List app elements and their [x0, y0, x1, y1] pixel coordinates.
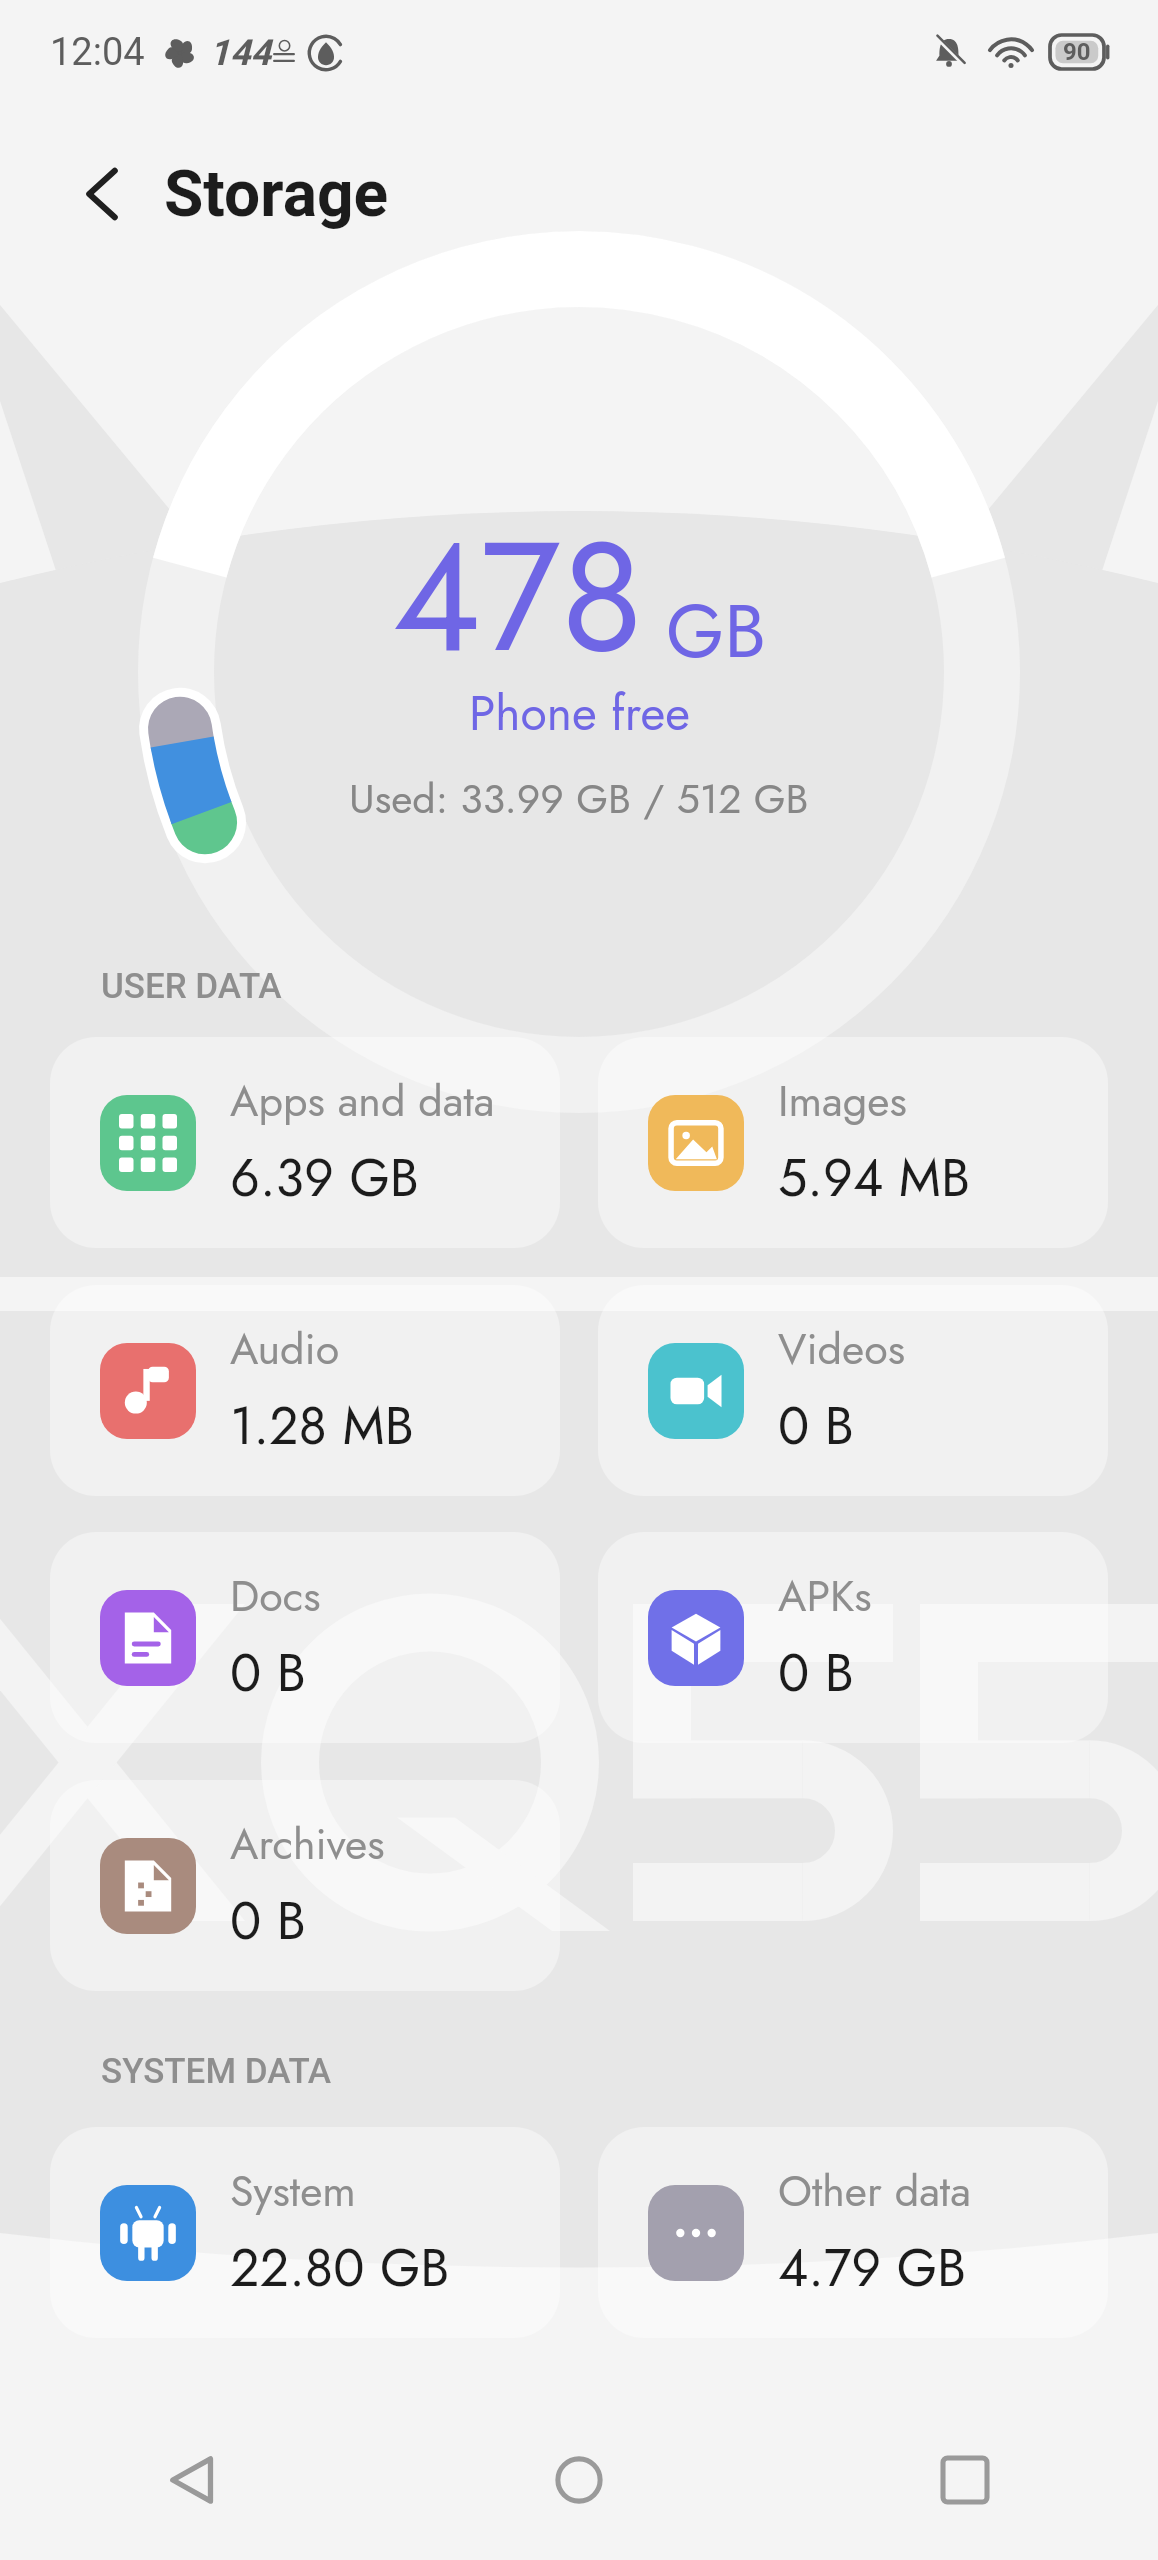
- staticText: 0 B: [230, 1635, 306, 1710]
- staticText: 22.80 GB: [230, 2230, 450, 2305]
- staticText: Phone free: [469, 679, 690, 748]
- staticText: 4.79 GB: [778, 2230, 967, 2305]
- button[interactable]: System: [50, 2127, 560, 2338]
- button[interactable]: Audio: [50, 1285, 560, 1496]
- staticText: 12:04: [50, 30, 145, 75]
- staticText: System: [230, 2160, 356, 2222]
- staticText: 478: [392, 487, 644, 707]
- button[interactable]: Videos: [598, 1285, 1108, 1496]
- staticText: Storage: [164, 157, 389, 232]
- staticText: Apps and data: [230, 1070, 495, 1132]
- staticText: Other data: [778, 2160, 971, 2222]
- staticText: Audio: [230, 1318, 340, 1380]
- button[interactable]: Recents: [772, 2400, 1158, 2560]
- staticText: Used: 33.99 GB / 512 GB: [349, 769, 809, 828]
- staticText: GB: [666, 577, 766, 685]
- staticText: 144: [209, 32, 271, 74]
- button[interactable]: Other data: [598, 2127, 1108, 2338]
- staticText: 0 B: [778, 1388, 854, 1463]
- staticText: Docs: [230, 1565, 321, 1627]
- staticText: Videos: [778, 1318, 906, 1380]
- button[interactable]: APKs: [598, 1532, 1108, 1743]
- button[interactable]: Back: [56, 148, 148, 240]
- staticText: APKs: [778, 1565, 872, 1627]
- staticText: Archives: [230, 1813, 385, 1875]
- button[interactable]: Home: [386, 2400, 772, 2560]
- staticText: 6.39 GB: [230, 1140, 419, 1215]
- staticText: 1.28 MB: [230, 1388, 414, 1463]
- button[interactable]: Archives: [50, 1780, 560, 1991]
- staticText: 5.94 MB: [778, 1140, 970, 1215]
- button[interactable]: Docs: [50, 1532, 560, 1743]
- staticText: 0 B: [778, 1635, 854, 1710]
- button[interactable]: Apps and data: [50, 1037, 560, 1248]
- staticText: SYSTEM DATA: [101, 2051, 331, 2092]
- staticText: USER DATA: [101, 966, 282, 1007]
- button[interactable]: Images: [598, 1037, 1108, 1248]
- staticText: 90: [1063, 38, 1091, 66]
- button[interactable]: Back: [0, 2400, 386, 2560]
- staticText: Images: [778, 1070, 907, 1132]
- staticText: 0 B: [230, 1883, 306, 1958]
